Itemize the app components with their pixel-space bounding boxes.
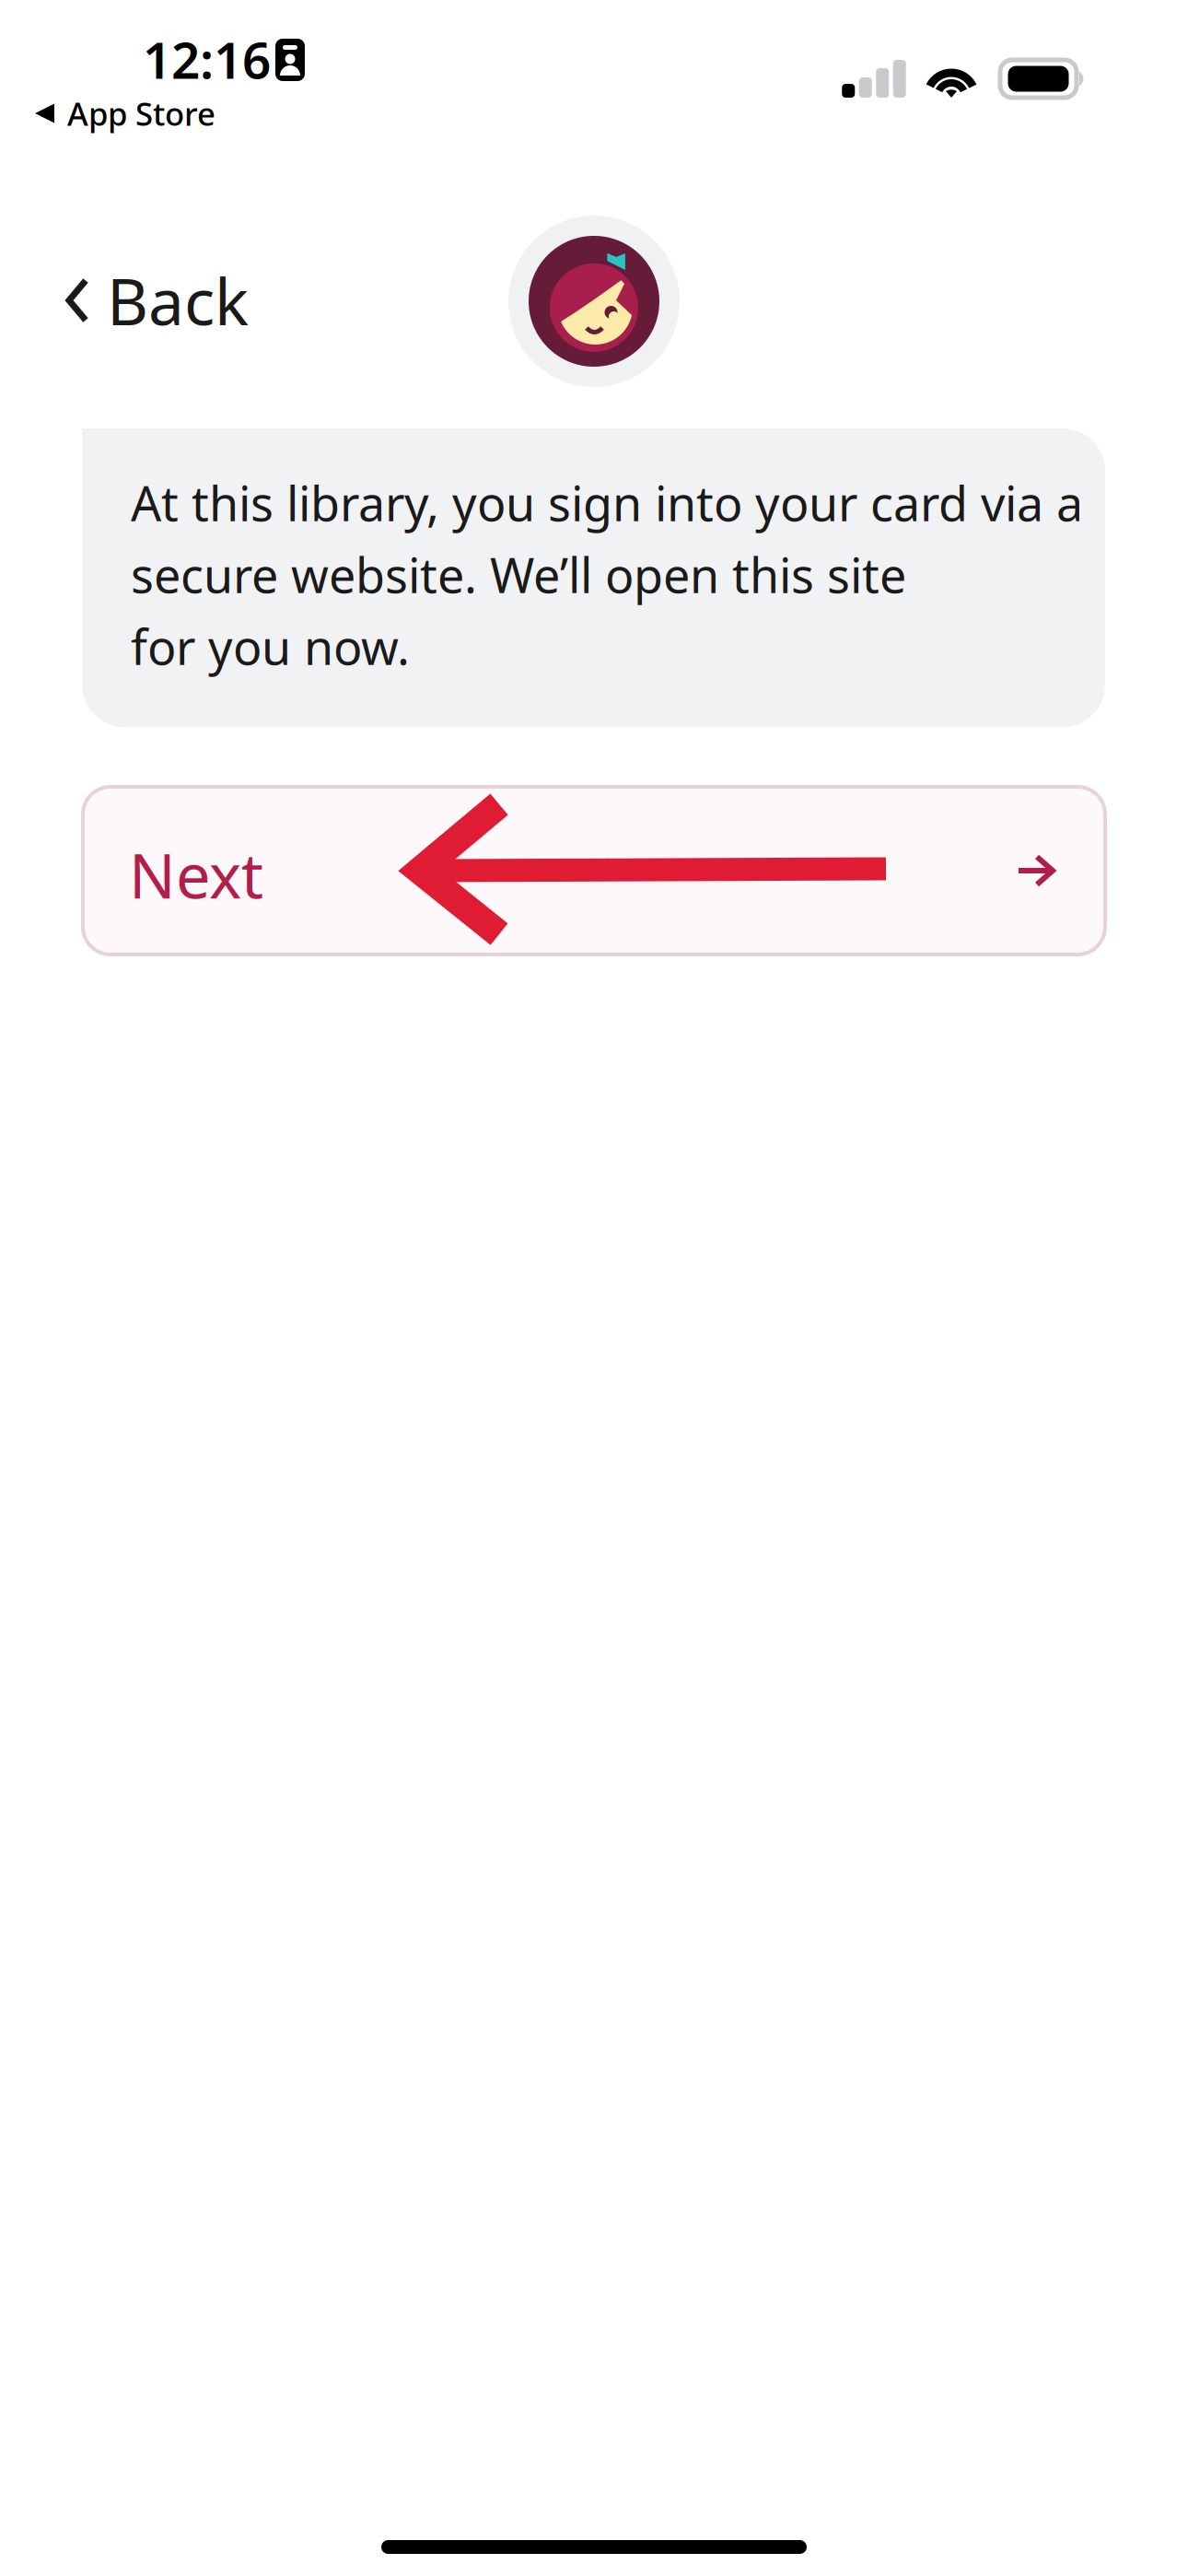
staticText: Next: [129, 834, 263, 915]
button[interactable]: Back: [44, 234, 271, 367]
button[interactable]: Next: [83, 787, 1105, 954]
staticText: At this library, you sign into your card…: [131, 471, 1083, 678]
staticText: Back: [107, 258, 249, 343]
staticText: 12:16: [143, 26, 271, 93]
staticText: App Store: [67, 92, 215, 135]
button[interactable]: App Store: [20, 79, 230, 147]
